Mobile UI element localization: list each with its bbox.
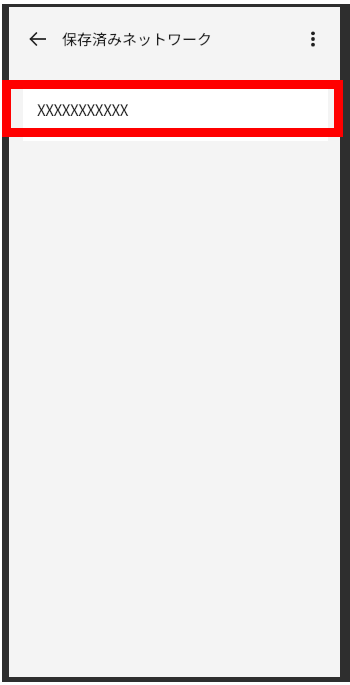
button[interactable]: XXXXXXXXXXX xyxy=(23,85,328,141)
button[interactable]: More options xyxy=(290,16,336,62)
button[interactable]: Back xyxy=(15,16,61,62)
other: 保存済みネットワーク xyxy=(62,27,227,49)
